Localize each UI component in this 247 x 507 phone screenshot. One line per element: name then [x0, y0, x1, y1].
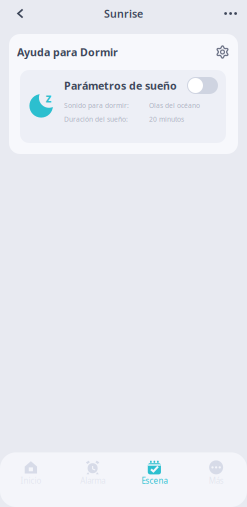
staticText: Duración del sueño: — [64, 115, 128, 124]
button[interactable]: Settings — [216, 45, 229, 58]
button[interactable]: Alarma — [62, 458, 124, 488]
staticText: Más — [209, 475, 224, 486]
staticText: z — [46, 90, 52, 106]
button[interactable]: Back — [0, 1, 36, 25]
staticText: Sunrise — [104, 6, 143, 21]
button[interactable]: More options — [212, 3, 247, 24]
staticText: 20 minutos — [149, 115, 184, 124]
staticText: Sonido para dormir: — [64, 101, 129, 110]
staticText: Escena — [141, 475, 167, 486]
staticText: Ayuda para Dormir — [17, 45, 118, 59]
staticText: Olas del océano — [149, 101, 200, 110]
button[interactable]: Más — [185, 458, 247, 488]
staticText: Alarma — [80, 475, 105, 486]
staticText: Inicio — [20, 475, 41, 486]
button[interactable]: Inicio — [0, 458, 62, 488]
staticText: Parámetros de sueño — [64, 78, 177, 93]
button[interactable]: Escena — [123, 458, 185, 488]
